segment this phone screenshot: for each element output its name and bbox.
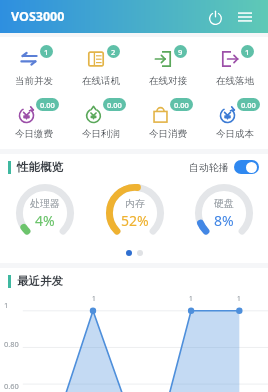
staticText: 8% (214, 211, 234, 230)
staticText: 0.00 (241, 100, 256, 110)
staticText: 0.60 (4, 381, 19, 391)
button[interactable]: 0.00 (67, 96, 134, 143)
staticText: 4% (35, 211, 55, 230)
staticText: 最近并发 (17, 274, 63, 288)
staticText: 1 (237, 294, 241, 303)
staticText: 1 (44, 47, 49, 57)
staticText: 今日消费 (149, 128, 187, 140)
staticText: 0.80 (4, 339, 19, 349)
staticText: 1 (92, 294, 96, 303)
staticText: 1 (189, 294, 193, 303)
button[interactable]: 0.00 (134, 96, 201, 143)
staticText: VOS3000 (11, 8, 65, 25)
button[interactable]: 自动轮播 (189, 160, 259, 174)
button[interactable]: 9 (134, 43, 201, 90)
button[interactable]: 1 (201, 43, 268, 90)
staticText: 在线落地 (216, 75, 254, 87)
staticText: 硬盘 (214, 197, 234, 210)
staticText: 9 (178, 47, 183, 57)
button[interactable]: Power (202, 4, 228, 30)
staticText: 内存 (125, 197, 145, 210)
staticText: 当前并发 (15, 75, 53, 87)
staticText: 自动轮播 (189, 161, 229, 174)
button[interactable]: 1 (0, 43, 67, 90)
staticText: 在线对接 (149, 75, 187, 87)
button[interactable]: 0.00 (201, 96, 268, 143)
staticText: 1 (4, 300, 9, 310)
staticText: 52% (121, 211, 149, 230)
button[interactable]: 硬盘 (179, 179, 268, 247)
staticText: 2 (111, 47, 116, 57)
staticText: 0.00 (107, 100, 122, 110)
staticText: 1 (245, 47, 250, 57)
staticText: 0.00 (174, 100, 189, 110)
staticText: 今日利润 (82, 128, 120, 140)
staticText: 今日成本 (216, 128, 254, 140)
staticText: 今日缴费 (15, 128, 53, 140)
staticText: 在线话机 (82, 75, 120, 87)
button[interactable]: 处理器 (0, 179, 90, 247)
staticText: 性能概览 (17, 160, 63, 174)
staticText: 处理器 (30, 197, 60, 210)
button[interactable]: 2 (67, 43, 134, 90)
button[interactable]: Menu (232, 4, 258, 30)
staticText: 0.00 (40, 100, 55, 110)
button[interactable]: 0.00 (0, 96, 67, 143)
button[interactable]: 内存 (90, 179, 179, 247)
